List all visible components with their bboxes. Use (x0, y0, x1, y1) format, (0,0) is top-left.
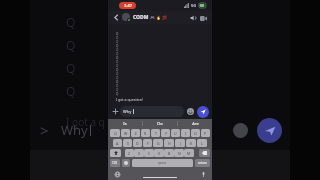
staticText: Q (66, 14, 76, 30)
button[interactable]: D (133, 139, 142, 147)
button[interactable]: F (143, 139, 152, 147)
button[interactable]: Q (116, 60, 208, 64)
button[interactable]: V (154, 149, 164, 157)
staticText: C (148, 151, 151, 156)
button[interactable]: U (171, 129, 180, 137)
button[interactable]: S (123, 139, 132, 147)
staticText: W (124, 131, 128, 136)
staticText: Q (116, 44, 119, 48)
staticText: Q (116, 60, 119, 64)
button[interactable]: P (201, 129, 210, 137)
staticText: Q (116, 40, 119, 44)
button[interactable]: space (132, 159, 193, 167)
button[interactable]: Q (116, 40, 208, 44)
button[interactable]: Z (125, 149, 134, 157)
button[interactable]: Q (116, 64, 208, 68)
staticText: Q (116, 84, 119, 88)
staticText: I (185, 131, 187, 136)
button[interactable]: Numbers (110, 159, 120, 167)
staticText: Why (123, 109, 132, 114)
staticText: Z (128, 151, 131, 156)
staticText: Q (116, 88, 119, 92)
button[interactable]: Send (197, 106, 209, 118)
button[interactable]: K (186, 139, 196, 147)
button[interactable]: C (144, 149, 154, 157)
button[interactable]: Y (161, 129, 170, 137)
button[interactable]: Change language (114, 171, 120, 177)
button[interactable]: Is (108, 119, 142, 128)
button[interactable]: X (134, 149, 144, 157)
staticText: U (174, 131, 177, 136)
button[interactable]: Q (116, 56, 208, 60)
staticText: X (138, 151, 141, 156)
button[interactable]: Q (116, 92, 208, 96)
button[interactable]: M (184, 149, 194, 157)
staticText: 5G (191, 3, 197, 8)
button[interactable]: N (174, 149, 184, 157)
button[interactable]: Q (116, 48, 208, 52)
staticText: > (40, 120, 49, 140)
staticText: K (190, 141, 193, 146)
staticText: Q (116, 36, 119, 40)
staticText: Q (116, 48, 119, 52)
staticText: Is (123, 121, 127, 126)
staticText: A (116, 141, 119, 146)
button[interactable]: Video call (198, 13, 208, 23)
staticText: O (194, 131, 197, 136)
button[interactable]: Dictation (200, 171, 206, 177)
button[interactable]: Back (112, 13, 121, 22)
staticText: E (135, 131, 137, 136)
button[interactable]: Emoji keyboard (122, 159, 130, 167)
button[interactable]: Q (116, 76, 208, 80)
button[interactable]: Q (116, 36, 208, 40)
button[interactable]: Q (116, 32, 208, 36)
button[interactable]: H (164, 139, 174, 147)
staticText: B (168, 151, 171, 156)
staticText: I got a question! (116, 97, 143, 102)
staticText: Q (66, 37, 76, 53)
button[interactable]: Voice call (188, 13, 198, 23)
button[interactable]: Shift (110, 149, 121, 157)
button[interactable]: A (113, 139, 122, 147)
button[interactable]: W (121, 129, 130, 137)
button[interactable]: Are (178, 119, 212, 128)
button[interactable]: B (164, 149, 174, 157)
staticText: Q (66, 60, 76, 76)
button[interactable]: I (181, 129, 190, 137)
staticText: G (157, 141, 160, 146)
button[interactable]: Emoji (186, 107, 195, 116)
button[interactable]: Q (116, 84, 208, 88)
button[interactable]: R (141, 129, 150, 137)
staticText: 3:47 (124, 3, 132, 8)
button[interactable]: T (151, 129, 160, 137)
button[interactable]: Q (116, 68, 208, 72)
staticText: space (158, 161, 167, 165)
button[interactable]: Backspace (199, 149, 210, 157)
button[interactable]: G (153, 139, 163, 147)
button[interactable]: Add attachment (111, 107, 120, 116)
button[interactable]: Return (195, 159, 210, 167)
button[interactable]: CODM (133, 14, 188, 21)
staticText: I got a q (66, 115, 105, 129)
button[interactable]: I got a question! (116, 97, 208, 102)
button[interactable]: Q (110, 129, 120, 137)
staticText: Q (66, 83, 76, 99)
button[interactable]: Q (116, 52, 208, 56)
button[interactable]: O (191, 129, 200, 137)
button[interactable]: Why (120, 106, 184, 117)
button[interactable]: Q (116, 72, 208, 76)
staticText: Q (116, 32, 119, 36)
button[interactable]: L (197, 139, 207, 147)
button[interactable]: Q (116, 80, 208, 84)
staticText: T (155, 131, 157, 136)
button[interactable]: Q (116, 44, 208, 48)
button[interactable]: Profile (122, 13, 131, 22)
button[interactable]: E (131, 129, 140, 137)
staticText: Q (116, 52, 119, 56)
button[interactable]: J (175, 139, 185, 147)
button[interactable]: Q (116, 88, 208, 92)
button[interactable]: Do (143, 119, 177, 128)
staticText: M (187, 151, 191, 156)
